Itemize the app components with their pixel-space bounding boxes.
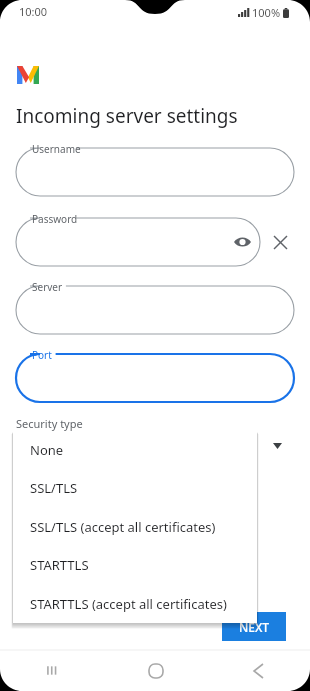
staticText: None	[30, 441, 64, 459]
button[interactable]: Recents	[0, 650, 104, 691]
staticText: SSL/TLS (accept all certificates)	[30, 518, 216, 536]
staticText: STARTTLS	[30, 556, 89, 574]
button[interactable]: None	[13, 431, 257, 469]
button[interactable]: SSL/TLS (accept all certificates)	[13, 508, 257, 546]
button[interactable]: Clear	[268, 230, 292, 254]
button[interactable]: STARTTLS	[13, 546, 257, 584]
staticText: 10:00	[19, 4, 48, 19]
button[interactable]: Security type dropdown	[268, 437, 286, 455]
button[interactable]: Back	[207, 650, 310, 691]
button[interactable]: Port	[16, 354, 294, 402]
button[interactable]: Home	[104, 650, 207, 691]
staticText: Server	[32, 280, 63, 294]
staticText: STARTTLS (accept all certificates)	[30, 595, 227, 613]
button[interactable]: Username	[16, 148, 294, 196]
staticText: Port	[32, 348, 52, 362]
button[interactable]: NEXT	[222, 612, 286, 641]
staticText: NEXT	[239, 619, 270, 635]
staticText: Password	[32, 212, 78, 226]
button[interactable]: SSL/TLS	[13, 469, 257, 507]
staticText: 100%	[252, 5, 281, 20]
staticText: Security type	[16, 416, 83, 431]
button[interactable]: Password	[16, 218, 260, 266]
button[interactable]: Server	[16, 286, 294, 334]
button[interactable]: STARTTLS (accept all certificates)	[13, 585, 257, 623]
button[interactable]: Show password	[230, 230, 254, 254]
staticText: SSL/TLS	[30, 479, 78, 497]
staticText: Incoming server settings	[16, 103, 238, 129]
staticText: Username	[32, 142, 81, 156]
